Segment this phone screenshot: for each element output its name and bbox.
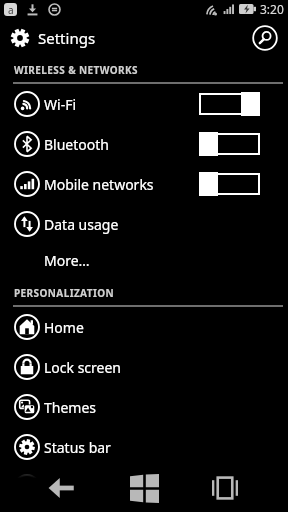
staticText: Data usage	[44, 215, 119, 234]
button[interactable]: Lock screen	[0, 347, 288, 387]
staticText: More…	[44, 251, 90, 270]
button[interactable]	[192, 468, 288, 508]
button[interactable]: Navigation	[0, 467, 288, 507]
staticText: PERSONALIZATION	[14, 286, 115, 300]
button[interactable]	[96, 468, 192, 508]
button[interactable]: Wi-Fi	[0, 84, 288, 124]
button[interactable]: Data usage	[0, 204, 288, 244]
staticText: Status bar	[44, 438, 111, 457]
button[interactable]: Bluetooth	[0, 124, 288, 164]
staticText: Themes	[44, 398, 97, 417]
staticText: Navigation	[44, 478, 116, 497]
button[interactable]: Themes	[0, 387, 288, 427]
staticText: Settings	[38, 28, 96, 48]
button[interactable]: More…	[0, 244, 288, 277]
staticText: a	[8, 3, 14, 16]
staticText: Bluetooth	[44, 135, 109, 154]
staticText: Mobile networks	[44, 175, 154, 194]
staticText: Lock screen	[44, 358, 122, 377]
staticText: Wi-Fi	[44, 95, 77, 114]
staticText: WIRELESS & NETWORKS	[14, 63, 138, 77]
button[interactable]: Home	[0, 307, 288, 347]
button[interactable]	[250, 23, 280, 53]
button[interactable]: Status bar	[0, 427, 288, 467]
staticText: 3:20	[260, 1, 284, 17]
button[interactable]: Mobile networks	[0, 164, 288, 204]
staticText: Home	[44, 318, 84, 337]
button[interactable]	[0, 468, 96, 508]
